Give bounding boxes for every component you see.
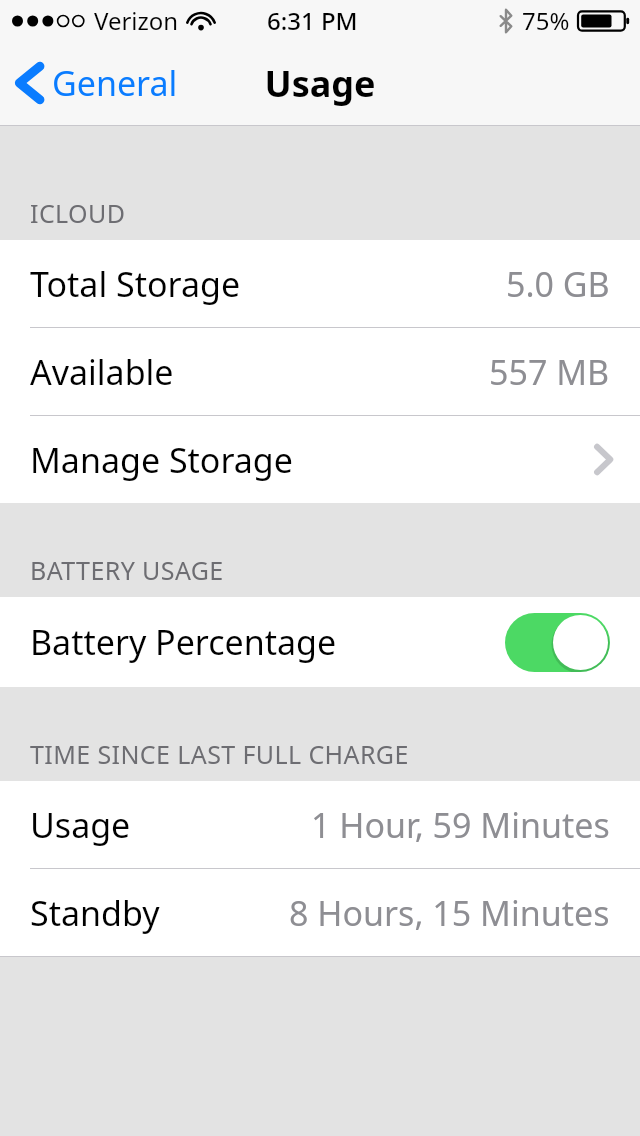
button[interactable]: Usage <box>0 781 640 868</box>
staticText: Manage Storage <box>30 437 293 483</box>
staticText: Total Storage <box>30 261 241 307</box>
staticText: Usage <box>264 59 376 108</box>
staticText: ICLOUD <box>30 196 126 230</box>
staticText: Available <box>30 349 174 395</box>
button[interactable]: Battery Percentage <box>0 597 640 687</box>
staticText: 75% <box>522 4 570 37</box>
button[interactable]: Total Storage <box>0 240 640 327</box>
button[interactable]: Standby <box>0 869 640 956</box>
button[interactable]: Available <box>0 328 640 415</box>
staticText: Standby <box>30 890 160 936</box>
staticText: Verizon <box>94 4 179 37</box>
staticText: 5.0 GB <box>506 261 610 307</box>
staticText: General <box>52 60 178 106</box>
staticText: 8 Hours, 15 Minutes <box>289 890 610 936</box>
button[interactable]: Manage Storage <box>0 416 640 503</box>
staticText: 557 MB <box>489 349 610 395</box>
staticText: Usage <box>30 802 131 848</box>
staticText: 6:31 PM <box>267 4 358 37</box>
staticText: Battery Percentage <box>30 619 337 665</box>
other: Battery Percentage toggle, on <box>505 613 610 672</box>
staticText: TIME SINCE LAST FULL CHARGE <box>30 737 409 771</box>
staticText: 1 Hour, 59 Minutes <box>311 802 610 848</box>
button[interactable]: General <box>0 52 190 114</box>
staticText: BATTERY USAGE <box>30 553 224 587</box>
